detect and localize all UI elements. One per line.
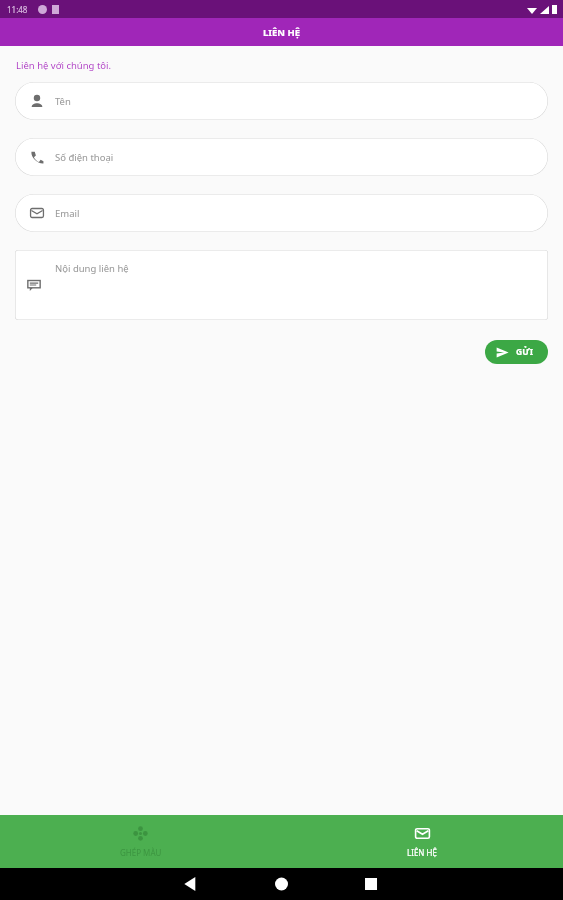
button[interactable]: Tên bbox=[15, 82, 548, 120]
staticText: Email bbox=[55, 207, 80, 220]
button[interactable]: Số điện thoại bbox=[15, 138, 548, 176]
button[interactable]: Email bbox=[15, 194, 548, 232]
staticText: Tên bbox=[55, 95, 71, 108]
staticText: Số điện thoại bbox=[55, 151, 114, 164]
staticText: 11:48 bbox=[7, 4, 28, 15]
staticText: LIÊN HỆ bbox=[407, 847, 437, 858]
staticText: GHÉP MÀU bbox=[120, 847, 162, 858]
staticText: GỬI bbox=[516, 346, 534, 358]
staticText: Nội dung liên hệ bbox=[55, 262, 129, 275]
staticText: Liên hệ với chúng tôi. bbox=[16, 59, 112, 72]
staticText: LIÊN HỆ bbox=[263, 26, 301, 39]
button[interactable]: Liên hệ bbox=[281, 815, 563, 868]
button[interactable]: GỬI bbox=[485, 340, 548, 364]
button[interactable]: Nội dung liên hệ bbox=[15, 250, 548, 320]
